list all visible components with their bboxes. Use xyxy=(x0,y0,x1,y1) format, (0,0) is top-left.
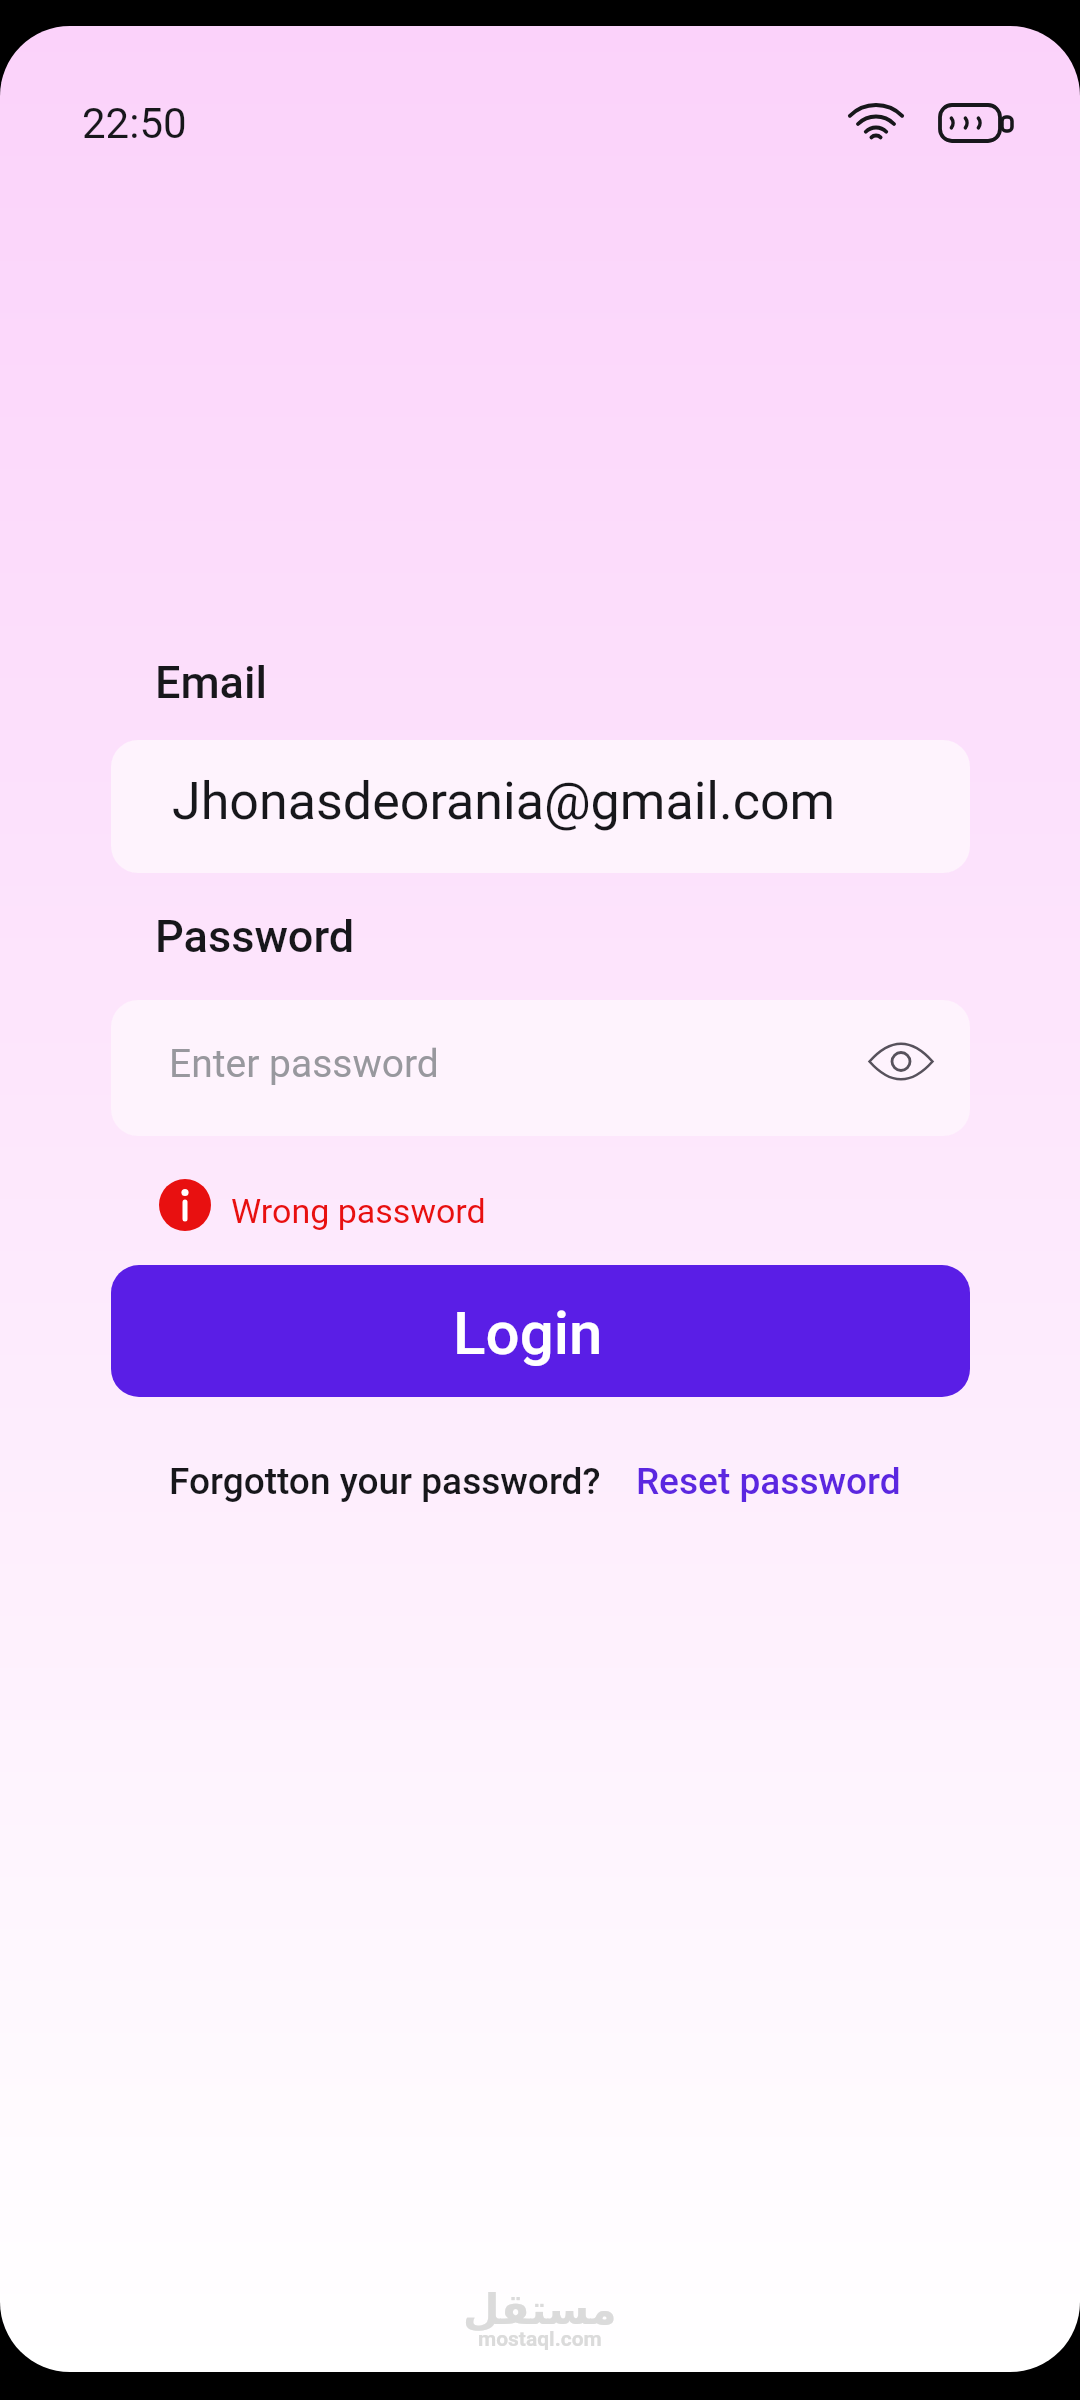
button[interactable] xyxy=(111,740,970,873)
staticText: Email xyxy=(155,656,268,709)
button[interactable] xyxy=(111,1000,970,1136)
staticText: mostaql.com xyxy=(478,2327,602,2352)
staticText: Login xyxy=(453,1298,603,1368)
button[interactable] xyxy=(111,1265,970,1397)
staticText: 22:50 xyxy=(82,99,187,148)
staticText: Wrong password xyxy=(231,1191,486,1231)
staticText: Forgotton your password? xyxy=(169,1460,601,1503)
staticText: Enter password xyxy=(169,1041,439,1087)
staticText: Password xyxy=(155,910,355,963)
staticText: Jhonasdeorania@gmail.com xyxy=(172,771,836,832)
staticText: Reset password xyxy=(636,1460,901,1503)
button[interactable]: Reset password xyxy=(636,1460,901,1503)
staticText: مستقل xyxy=(463,2285,617,2334)
